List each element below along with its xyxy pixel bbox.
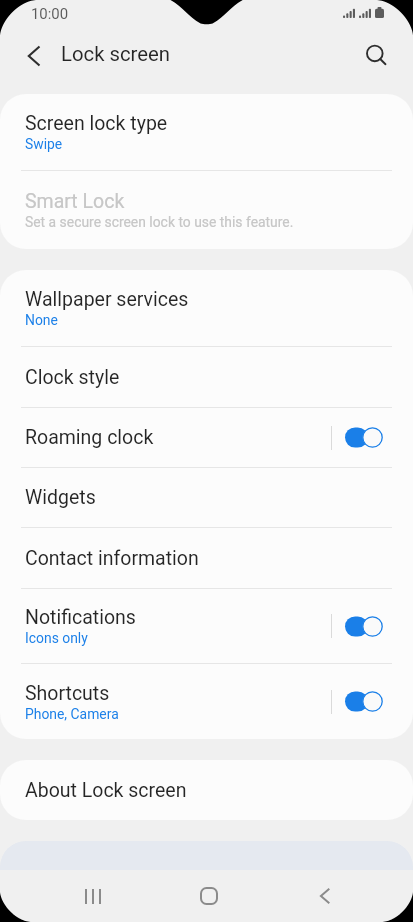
staticText: Contact information	[25, 547, 199, 570]
staticText: Smart Lock	[25, 190, 125, 213]
staticText: Icons only	[25, 630, 88, 646]
button[interactable]: Screen lock type	[0, 94, 413, 170]
staticText: Wallpaper services	[25, 288, 189, 311]
button[interactable]: Home	[180, 870, 238, 922]
button[interactable]: Toggle Shortcuts	[345, 691, 383, 712]
staticText: Notifications	[25, 606, 136, 629]
staticText: Phone, Camera	[25, 706, 119, 722]
button[interactable]: Clock style	[0, 347, 413, 407]
staticText: Screen lock type	[25, 112, 168, 135]
staticText: Set a secure screen lock to use this fea…	[25, 214, 294, 230]
button[interactable]: Notifications	[0, 589, 413, 663]
button[interactable]: Recents	[64, 870, 122, 922]
button[interactable]: Toggle Roaming clock	[345, 427, 383, 448]
staticText: Swipe	[25, 136, 63, 152]
button[interactable]: Back	[296, 870, 354, 922]
button[interactable]: Shortcuts	[0, 664, 413, 739]
button[interactable]: Roaming clock	[0, 408, 413, 467]
staticText: Roaming clock	[25, 426, 154, 449]
staticText: None	[25, 312, 58, 328]
staticText: Widgets	[25, 486, 96, 509]
button[interactable]: Widgets	[0, 468, 413, 527]
staticText: 10:00	[31, 5, 69, 22]
button[interactable]: Search	[352, 31, 401, 80]
button[interactable]: About Lock screen	[0, 760, 413, 820]
button[interactable]: Contact information	[0, 528, 413, 588]
staticText: Shortcuts	[25, 682, 110, 705]
button[interactable]: Wallpaper services	[0, 270, 413, 346]
button[interactable]: Back	[9, 31, 58, 80]
button[interactable]: Toggle Notifications	[345, 616, 383, 637]
staticText: Clock style	[25, 366, 120, 389]
staticText: Lock screen	[61, 42, 170, 66]
staticText: About Lock screen	[25, 779, 187, 802]
button[interactable]: Smart Lock	[0, 171, 413, 249]
